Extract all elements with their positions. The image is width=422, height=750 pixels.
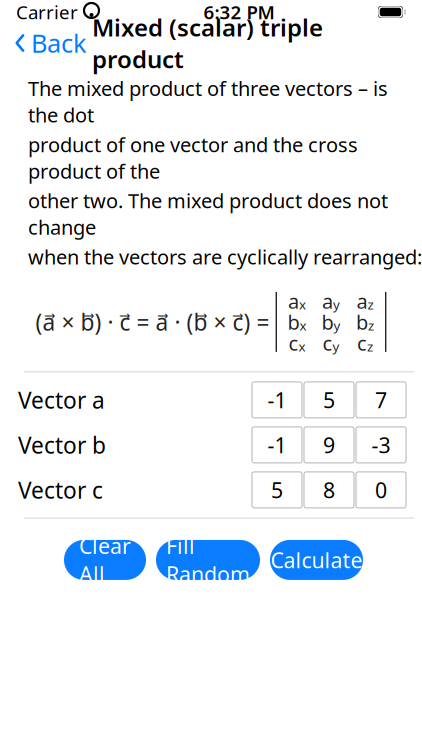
button[interactable]: -1: [252, 382, 302, 418]
button[interactable]: 7: [356, 382, 406, 418]
staticText: z: [367, 337, 373, 355]
button[interactable]: Back: [0, 20, 87, 66]
staticText: 7: [375, 386, 387, 414]
staticText: z: [367, 295, 373, 313]
staticText: Carrier: [16, 0, 78, 24]
staticText: when the vectors are cyclically rearrang…: [28, 243, 422, 270]
button[interactable]: 8: [304, 472, 354, 508]
staticText: Vector c: [18, 475, 103, 505]
staticText: a: [356, 288, 367, 314]
button[interactable]: Clear All: [64, 540, 146, 580]
staticText: Vector a: [18, 385, 105, 415]
staticText: y: [333, 316, 340, 334]
staticText: product of one vector and the cross prod…: [28, 131, 358, 184]
staticText: y: [332, 337, 339, 355]
staticText: z: [368, 316, 374, 334]
staticText: Clear All: [79, 532, 131, 588]
staticText: a: [322, 288, 333, 314]
staticText: 9: [323, 431, 335, 459]
staticText: a: [288, 288, 299, 314]
staticText: 6:32 PM: [203, 0, 274, 24]
staticText: b: [321, 309, 333, 335]
staticText: x: [299, 295, 306, 313]
staticText: 5: [271, 476, 283, 504]
staticText: other two. The mixed product does not ch…: [28, 187, 388, 240]
button[interactable]: 5: [304, 382, 354, 418]
staticText: -1: [267, 386, 286, 414]
staticText: x: [299, 316, 306, 334]
staticText: Back: [31, 26, 87, 60]
staticText: x: [298, 337, 305, 355]
staticText: b: [287, 309, 299, 335]
staticText: 0: [375, 476, 387, 504]
staticText: c: [357, 330, 367, 356]
button[interactable]: 9: [304, 427, 354, 463]
staticText: y: [333, 295, 340, 313]
button[interactable]: 0: [356, 472, 406, 508]
staticText: c: [288, 330, 298, 356]
button[interactable]: 5: [252, 472, 302, 508]
button[interactable]: Fill Random: [156, 540, 260, 580]
staticText: -3: [371, 431, 390, 459]
staticText: Vector b: [18, 430, 106, 460]
staticText: 5: [323, 386, 335, 414]
staticText: 8: [323, 476, 335, 504]
staticText: c: [322, 330, 332, 356]
button[interactable]: -1: [252, 427, 302, 463]
staticText: Fill Random: [166, 532, 250, 588]
staticText: -1: [267, 431, 286, 459]
staticText: The mixed product of three vectors – is …: [28, 75, 388, 128]
staticText: (a⃗ × b⃗) · c⃗ = a⃗ · (b⃗ × c⃗) =: [36, 307, 270, 337]
staticText: Mixed (scalar) triple product: [92, 11, 323, 75]
staticText: Calculate: [270, 546, 362, 574]
button[interactable]: Calculate: [270, 540, 363, 580]
button[interactable]: -3: [356, 427, 406, 463]
staticText: b: [356, 309, 368, 335]
